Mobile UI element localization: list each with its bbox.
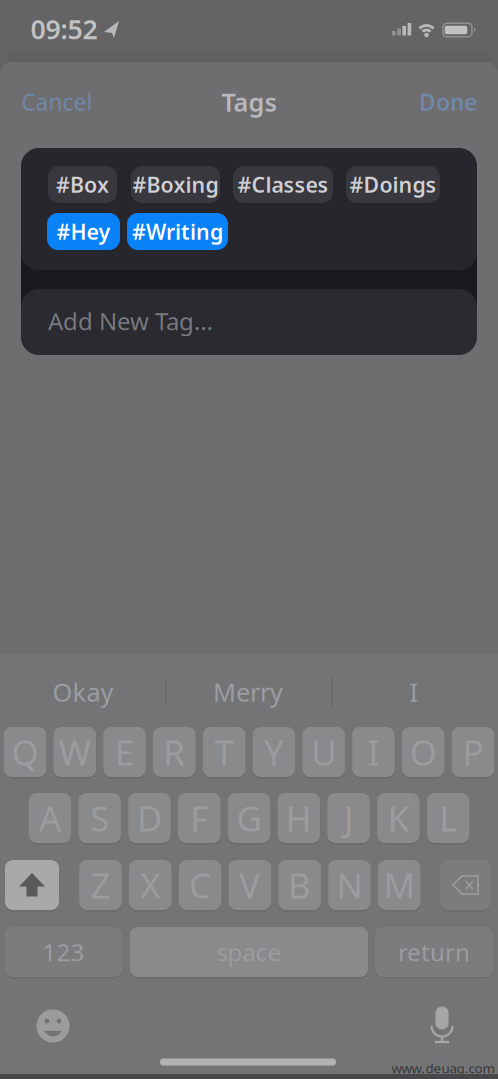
staticText: E bbox=[115, 729, 134, 775]
button[interactable]: E bbox=[103, 727, 146, 777]
staticText: G bbox=[236, 795, 261, 841]
button[interactable]: O bbox=[402, 727, 444, 777]
button[interactable]: #Boxing bbox=[131, 166, 220, 203]
button[interactable]: #Doings bbox=[346, 166, 440, 203]
button[interactable]: S bbox=[78, 793, 121, 843]
staticText: Okay bbox=[52, 675, 113, 709]
staticText: Done bbox=[419, 87, 477, 117]
staticText: #Hey bbox=[56, 217, 110, 246]
button[interactable]: M bbox=[378, 860, 420, 910]
button[interactable]: R bbox=[153, 727, 196, 777]
staticText: N bbox=[336, 862, 362, 908]
staticText: space bbox=[216, 936, 281, 968]
staticText: I bbox=[409, 675, 418, 709]
button[interactable]: D bbox=[128, 793, 171, 843]
staticText: Z bbox=[90, 862, 110, 908]
staticText: Merry bbox=[213, 675, 283, 709]
button[interactable]: Merry bbox=[173, 670, 323, 714]
staticText: #Doings bbox=[349, 170, 436, 199]
staticText: #Writing bbox=[132, 217, 223, 246]
staticText: T bbox=[215, 729, 234, 775]
staticText: Q bbox=[11, 729, 38, 775]
staticText: Y bbox=[264, 729, 284, 775]
staticText: B bbox=[288, 862, 311, 908]
button[interactable]: 123 bbox=[5, 927, 122, 977]
button[interactable] bbox=[422, 1004, 462, 1048]
staticText: H bbox=[286, 795, 312, 841]
staticText: K bbox=[388, 795, 409, 841]
staticText: I bbox=[367, 729, 379, 775]
staticText: C bbox=[189, 862, 211, 908]
button[interactable]: I bbox=[339, 670, 489, 714]
staticText: J bbox=[344, 795, 353, 841]
button[interactable]: Cancel bbox=[12, 82, 102, 122]
staticText: #Box bbox=[56, 170, 109, 199]
staticText: D bbox=[137, 795, 162, 841]
staticText: X bbox=[140, 862, 160, 908]
button[interactable]: #Classes bbox=[233, 166, 333, 203]
button[interactable]: I bbox=[352, 727, 395, 777]
staticText: 09:52 bbox=[30, 11, 97, 47]
button[interactable]: K bbox=[377, 793, 420, 843]
staticText: M bbox=[384, 862, 415, 908]
staticText: Tags bbox=[221, 85, 276, 119]
button[interactable]: B bbox=[278, 860, 321, 910]
button[interactable]: return bbox=[375, 927, 493, 977]
button[interactable]: X bbox=[129, 860, 171, 910]
button[interactable]: J bbox=[327, 793, 370, 843]
button[interactable]: #Box bbox=[48, 166, 117, 203]
button[interactable]: T bbox=[203, 727, 245, 777]
staticText: L bbox=[439, 795, 457, 841]
staticText: P bbox=[462, 729, 483, 775]
staticText: F bbox=[190, 795, 208, 841]
staticText: O bbox=[410, 729, 437, 775]
button[interactable]: #Hey bbox=[47, 213, 120, 250]
button[interactable]: Y bbox=[253, 727, 295, 777]
staticText: www.deuaq.com bbox=[391, 1059, 494, 1077]
staticText: 123 bbox=[42, 936, 84, 968]
staticText: V bbox=[239, 862, 260, 908]
button[interactable]: U bbox=[302, 727, 345, 777]
staticText: #Boxing bbox=[132, 170, 218, 199]
button[interactable]: Done bbox=[408, 82, 488, 122]
button[interactable] bbox=[35, 1008, 70, 1043]
button[interactable]: Z bbox=[79, 860, 122, 910]
staticText: S bbox=[90, 795, 109, 841]
staticText: return bbox=[398, 936, 470, 968]
button[interactable]: Add New Tag… bbox=[48, 296, 468, 346]
button[interactable]: #Writing bbox=[127, 213, 228, 250]
button[interactable] bbox=[440, 860, 491, 910]
button[interactable]: N bbox=[328, 860, 371, 910]
button[interactable]: P bbox=[452, 727, 494, 777]
button[interactable]: Q bbox=[4, 727, 46, 777]
button[interactable]: L bbox=[427, 793, 469, 843]
button[interactable]: C bbox=[179, 860, 221, 910]
button[interactable]: space bbox=[130, 927, 368, 977]
staticText: A bbox=[39, 795, 61, 841]
button[interactable]: A bbox=[29, 793, 71, 843]
button[interactable]: F bbox=[178, 793, 220, 843]
button[interactable]: G bbox=[228, 793, 270, 843]
staticText: Add New Tag… bbox=[48, 305, 213, 337]
button[interactable]: W bbox=[53, 727, 96, 777]
staticText: W bbox=[59, 729, 91, 775]
button[interactable]: V bbox=[229, 860, 271, 910]
staticText: #Classes bbox=[237, 170, 328, 199]
staticText: U bbox=[311, 729, 336, 775]
button[interactable] bbox=[5, 860, 59, 910]
button[interactable]: H bbox=[278, 793, 320, 843]
staticText: Cancel bbox=[21, 87, 92, 117]
staticText: R bbox=[163, 729, 185, 775]
button[interactable]: Okay bbox=[8, 670, 158, 714]
